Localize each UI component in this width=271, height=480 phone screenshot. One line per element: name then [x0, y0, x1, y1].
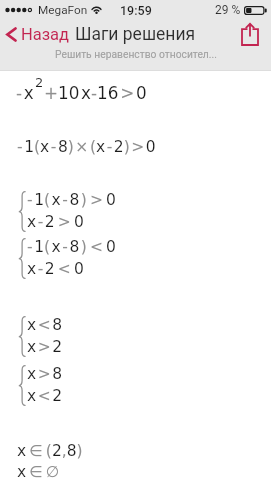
staticText: 19:59 [120, 3, 152, 18]
staticText: x < 2 [27, 387, 63, 405]
staticText: x > 8 [27, 365, 63, 383]
staticText: Назад [21, 25, 70, 44]
staticText: 29 % [215, 3, 241, 17]
staticText: x > 2 [27, 338, 63, 356]
staticText: Решить неравенство относител... [55, 48, 217, 60]
staticText: +10 x-16 > 0 [44, 83, 147, 103]
staticText: Шаги решения [75, 24, 196, 45]
staticText: - 1(x - 8) × (x - 2) > 0 [17, 138, 156, 156]
button[interactable]: Поделиться [234, 19, 266, 49]
staticText: - 1( x - 8 ) < 0 [27, 238, 116, 256]
button[interactable]: Назад [0, 20, 78, 50]
staticText: x - 2 < 0 [27, 260, 84, 278]
staticText: - x [16, 83, 34, 103]
staticText: MegaFon [38, 3, 88, 17]
staticText: x < 8 [27, 316, 63, 334]
staticText: x ∈ (2,8) [17, 442, 83, 460]
staticText: 2 [35, 75, 44, 90]
staticText: x - 2 > 0 [27, 213, 84, 231]
staticText: - 1( x - 8 ) > 0 [27, 191, 116, 209]
staticText: x ∈ ∅ [17, 463, 60, 480]
